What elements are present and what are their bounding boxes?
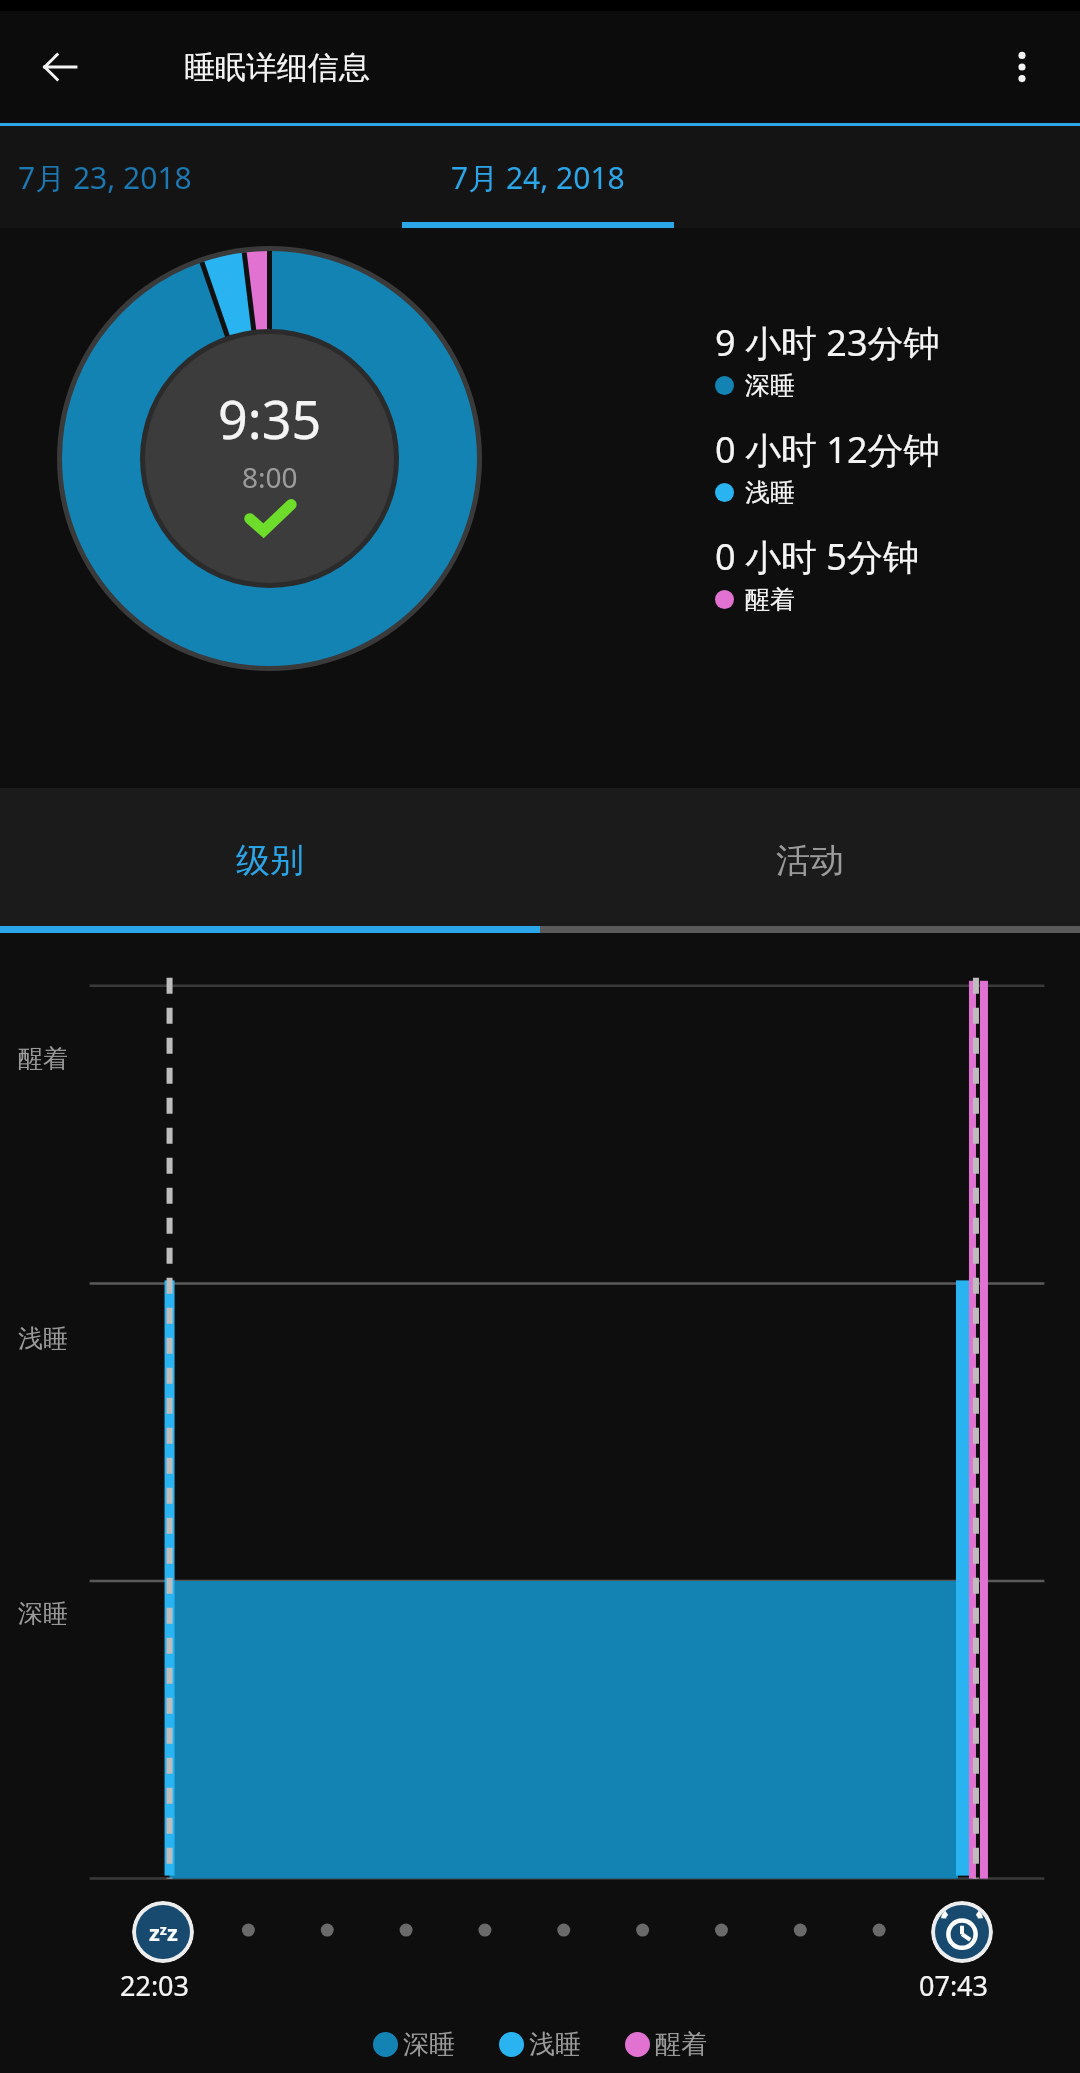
staticText: 22:03 bbox=[120, 1967, 190, 2004]
button[interactable]: 级别 bbox=[0, 788, 540, 933]
staticText: 深睡 bbox=[18, 1598, 68, 1629]
staticText: 9 小时 23分钟 bbox=[715, 318, 940, 367]
staticText: 浅睡 bbox=[745, 477, 795, 508]
staticText: 深睡 bbox=[745, 370, 795, 401]
button[interactable]: 7月 23, 2018 bbox=[0, 126, 285, 228]
button[interactable]: 活动 bbox=[540, 788, 1080, 933]
staticText: 07:43 bbox=[919, 1967, 989, 2004]
staticText: 0 小时 5分钟 bbox=[715, 532, 919, 581]
staticText: 浅睡 bbox=[529, 2028, 581, 2061]
button[interactable]: 7月 24, 2018 bbox=[358, 126, 718, 228]
staticText: 8:00 bbox=[242, 458, 298, 496]
staticText: 7月 23, 2018 bbox=[18, 157, 192, 198]
staticText: 级别 bbox=[236, 839, 304, 882]
button[interactable]: Sleep start bbox=[132, 1901, 194, 1963]
staticText: 深睡 bbox=[403, 2028, 455, 2061]
button[interactable]: Wake time bbox=[931, 1901, 993, 1963]
button[interactable]: More options bbox=[986, 31, 1058, 103]
staticText: 醒着 bbox=[18, 1043, 68, 1074]
button[interactable]: Back bbox=[24, 31, 96, 103]
staticText: 睡眠详细信息 bbox=[184, 48, 370, 87]
staticText: 7月 24, 2018 bbox=[451, 157, 625, 198]
staticText: 9:35 bbox=[218, 383, 322, 454]
staticText: 浅睡 bbox=[18, 1323, 68, 1354]
staticText: 0 小时 12分钟 bbox=[715, 425, 940, 474]
staticText: 醒着 bbox=[655, 2028, 707, 2061]
staticText: zᶻz bbox=[149, 1917, 178, 1947]
staticText: 活动 bbox=[776, 839, 844, 882]
staticText: 醒着 bbox=[745, 584, 795, 615]
